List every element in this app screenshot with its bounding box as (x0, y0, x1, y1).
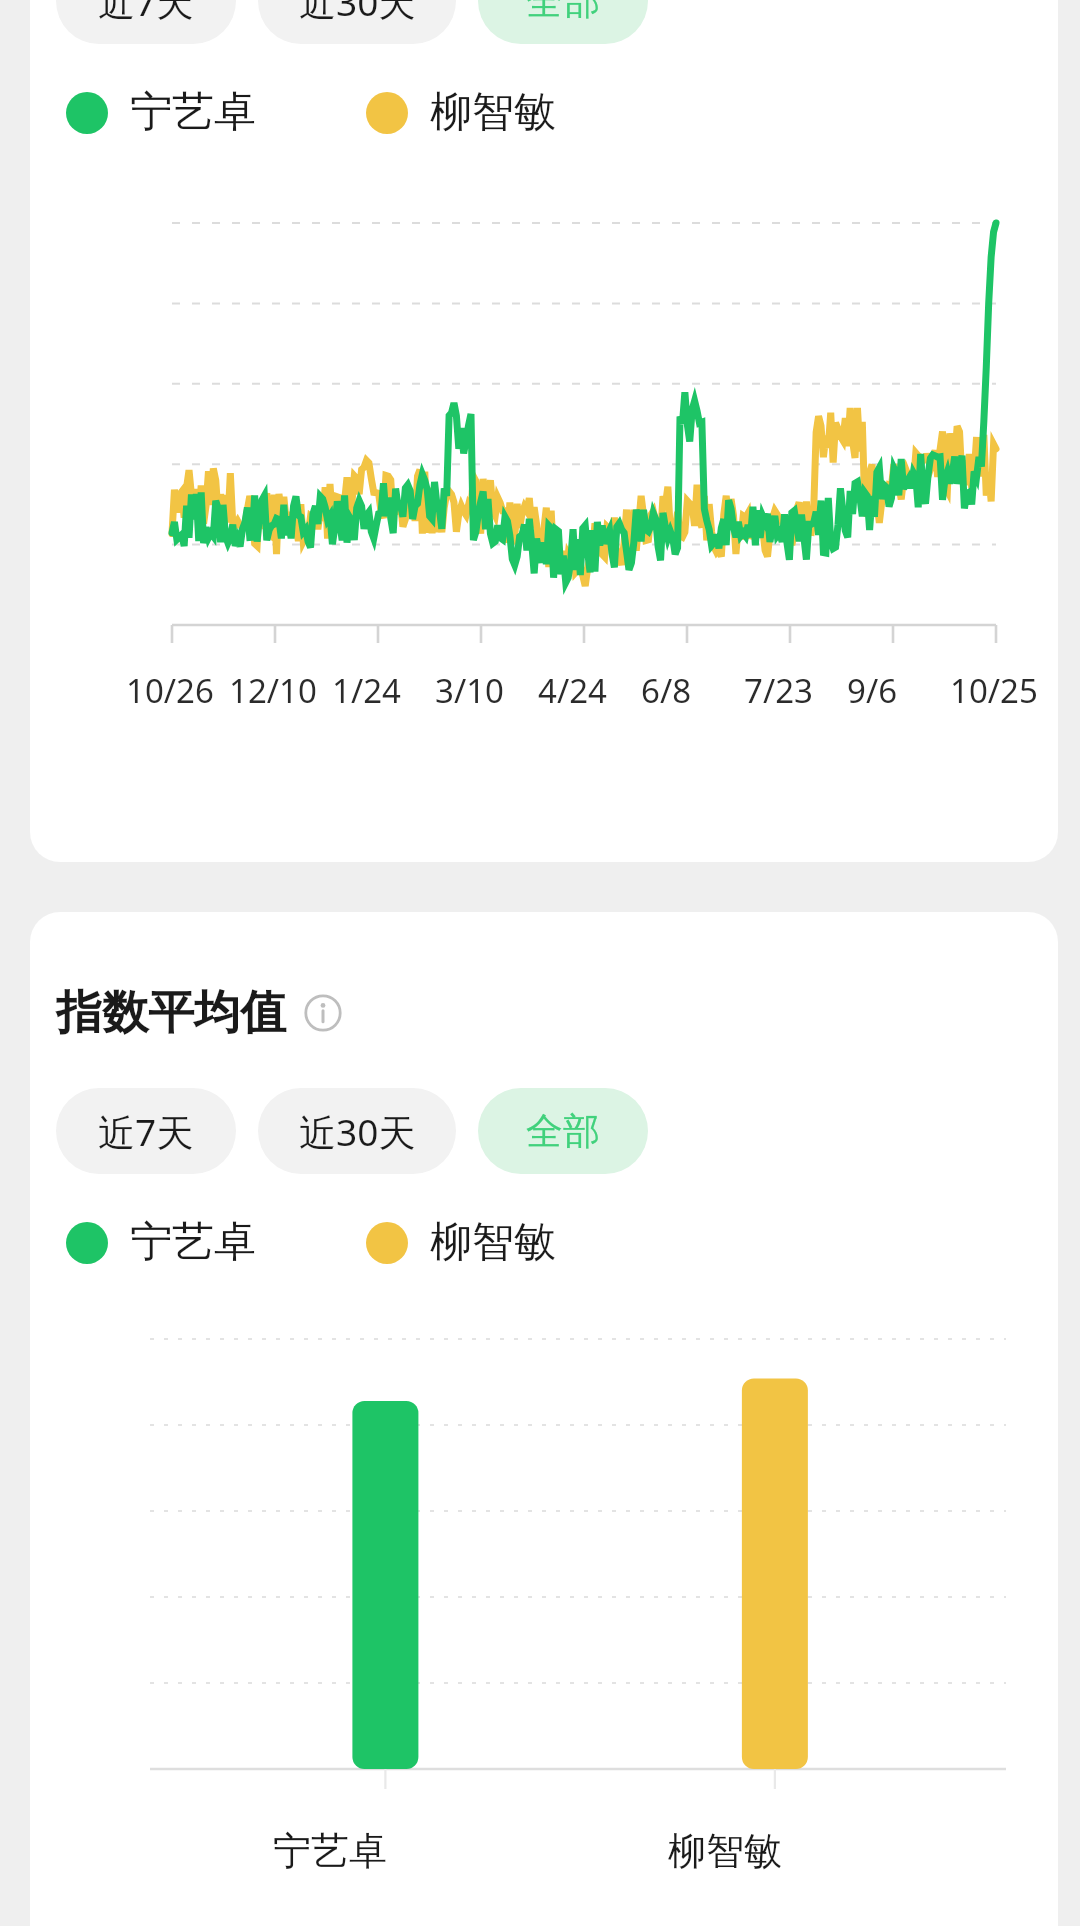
staticText: 10/26 (126, 668, 214, 713)
button[interactable]: 近7天 (56, 1088, 236, 1174)
staticText: 全部 (526, 1108, 600, 1155)
staticText: 6/8 (641, 668, 692, 713)
button[interactable]: 全部 (478, 1088, 648, 1174)
staticText: 宁艺卓 (130, 1216, 256, 1269)
staticText: 宁艺卓 (130, 86, 256, 139)
staticText: 近30天 (299, 1106, 416, 1157)
button[interactable]: 宁艺卓 (66, 1216, 256, 1269)
button[interactable]: 近30天 (258, 1088, 456, 1174)
staticText: 宁艺卓 (273, 1827, 387, 1875)
staticText: 近30天 (299, 0, 416, 27)
staticText: 12/10 (229, 668, 317, 713)
staticText: 柳智敏 (668, 1827, 782, 1875)
staticText: 7/23 (744, 668, 813, 713)
staticText: 近7天 (98, 0, 194, 27)
staticText: 10/25 (950, 668, 1038, 713)
staticText: 4/24 (538, 668, 607, 713)
button[interactable]: 柳智敏 (366, 1216, 556, 1269)
button[interactable]: 宁艺卓 (66, 86, 256, 139)
staticText: 柳智敏 (430, 86, 556, 139)
staticText: 近7天 (98, 1106, 194, 1157)
staticText: 9/6 (847, 668, 898, 713)
staticText: 指数平均值 (56, 984, 286, 1042)
staticText: 全部 (526, 0, 600, 25)
staticText: 柳智敏 (430, 1216, 556, 1269)
button[interactable]: 全部 (478, 0, 648, 44)
button[interactable]: 柳智敏 (366, 86, 556, 139)
staticText: 1/24 (332, 668, 401, 713)
staticText: 3/10 (435, 668, 504, 713)
button[interactable]: 指标说明 (304, 994, 342, 1032)
button[interactable]: 近7天 (56, 0, 236, 44)
button[interactable]: 近30天 (258, 0, 456, 44)
